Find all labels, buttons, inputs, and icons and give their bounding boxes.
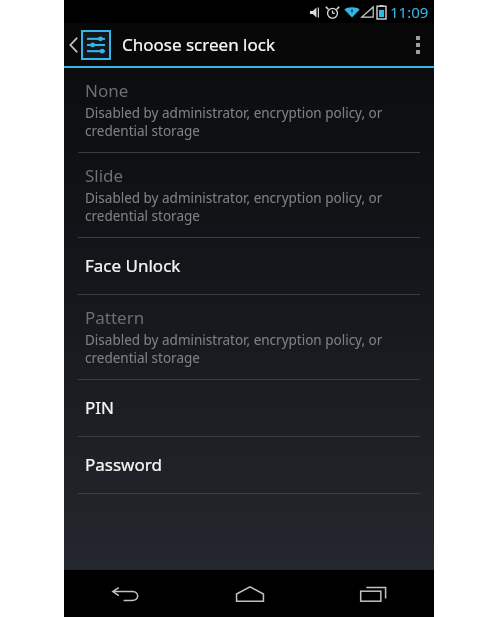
staticText: Password [85,453,162,476]
button[interactable]: Slide [64,153,434,237]
staticText: Disabled by administrator, encryption po… [85,189,383,225]
staticText: PIN [85,396,114,419]
button[interactable]: Recent apps [311,570,434,617]
button[interactable]: Home [188,570,311,617]
button[interactable]: Pattern [64,295,434,379]
button[interactable]: Navigate up [64,23,114,66]
staticText: None [85,79,129,102]
staticText: Face Unlock [85,254,181,277]
staticText: 11:09 [390,2,429,22]
button[interactable]: None [64,68,434,152]
staticText: Slide [85,164,124,187]
staticText: Disabled by administrator, encryption po… [85,104,383,140]
button[interactable]: PIN [64,380,434,436]
button[interactable]: Password [64,437,434,493]
button[interactable]: Face Unlock [64,238,434,294]
staticText: Pattern [85,306,145,329]
staticText: Disabled by administrator, encryption po… [85,331,383,367]
staticText: Choose screen lock [122,33,275,56]
button[interactable]: More options [402,23,434,66]
button[interactable]: Back [64,570,188,617]
